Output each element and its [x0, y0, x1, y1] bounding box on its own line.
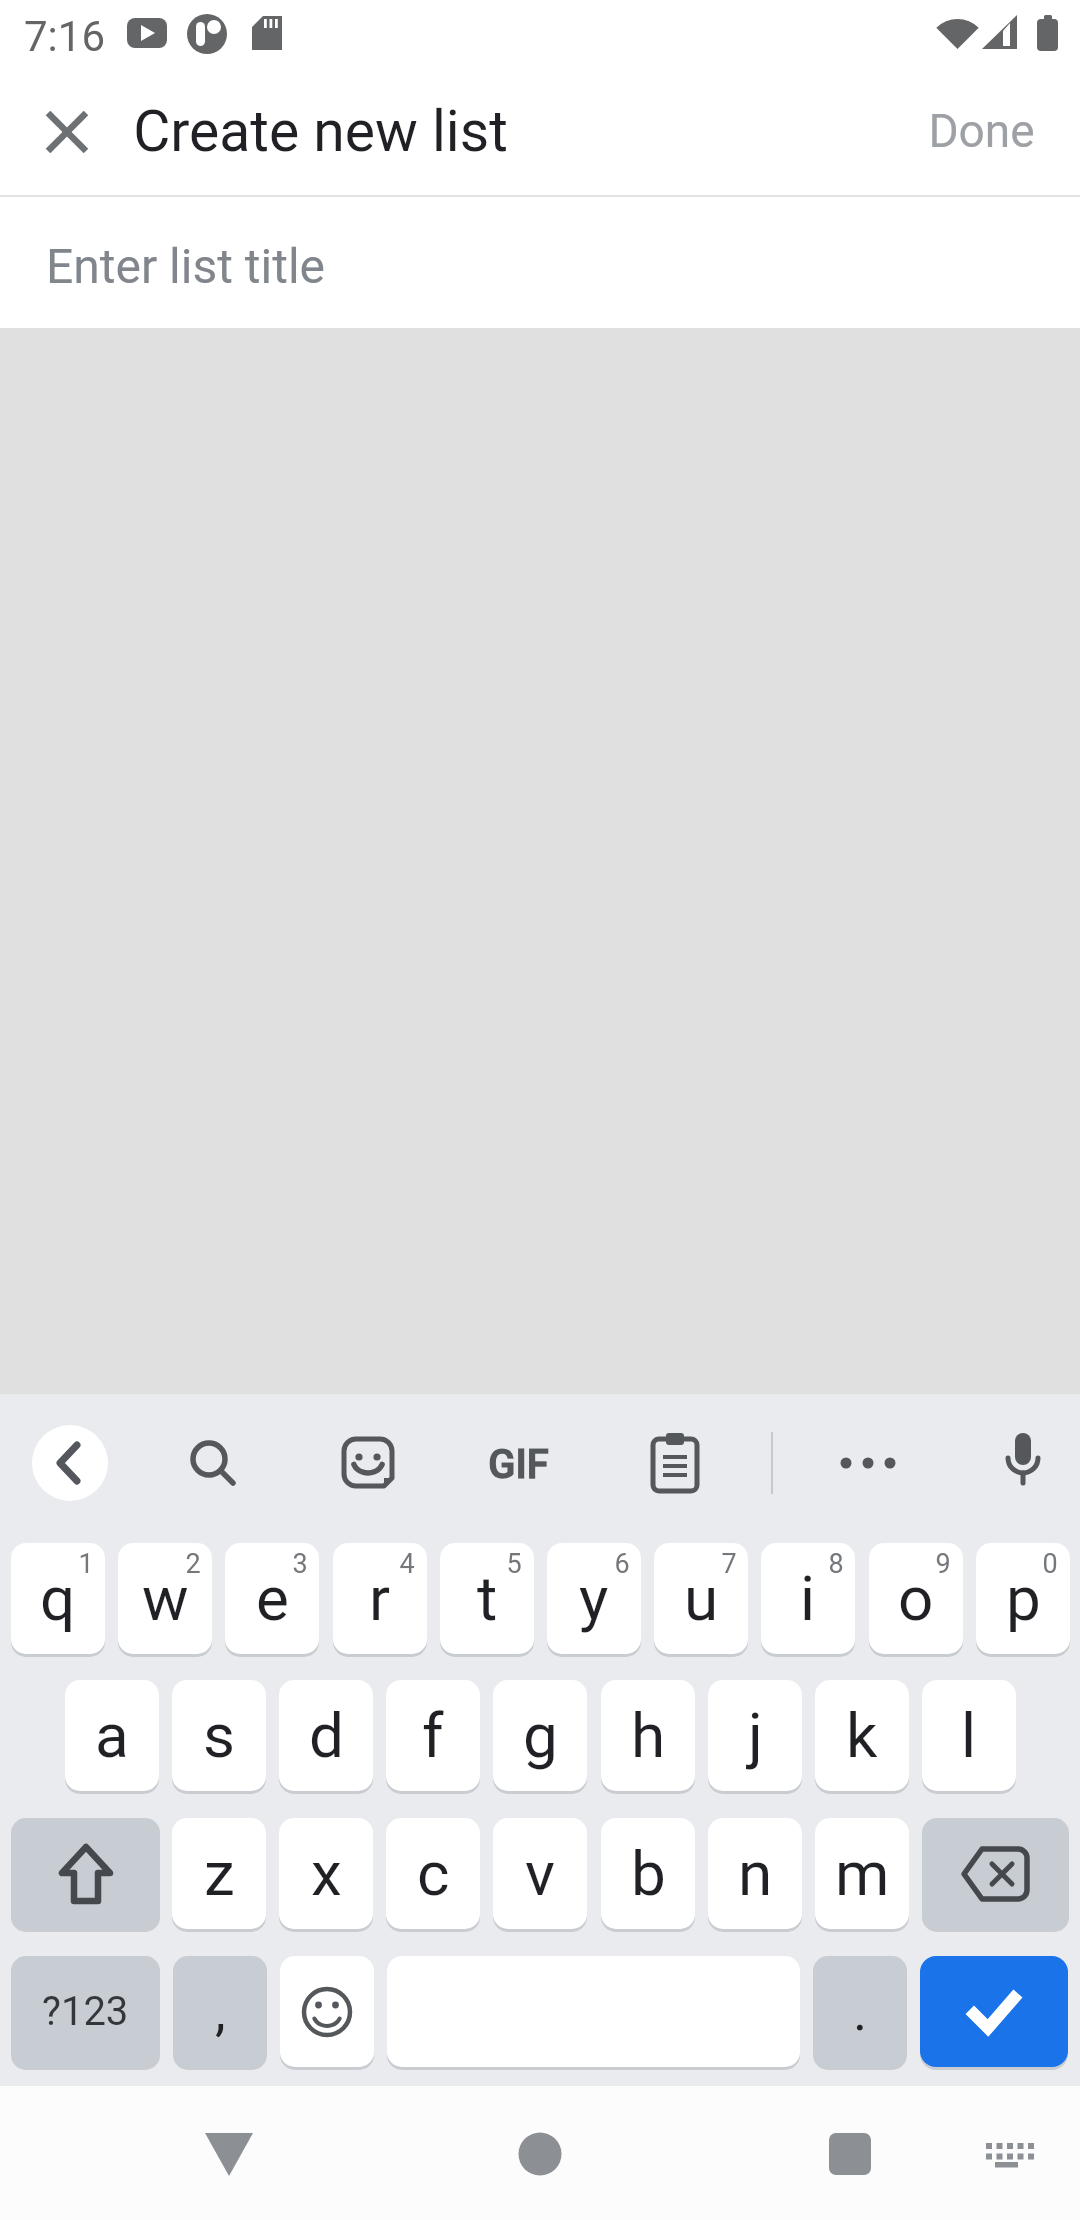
staticText: d: [309, 1699, 344, 1772]
staticText: q: [40, 1562, 76, 1635]
staticText: i: [800, 1562, 816, 1635]
button[interactable]: [922, 1818, 1069, 1929]
button[interactable]: [814, 2118, 886, 2190]
button[interactable]: a: [65, 1680, 159, 1791]
button[interactable]: [920, 1956, 1068, 2067]
button[interactable]: o: [869, 1543, 963, 1654]
button[interactable]: e: [225, 1543, 319, 1654]
button[interactable]: g: [493, 1680, 587, 1791]
staticText: o: [898, 1562, 934, 1635]
staticText: v: [525, 1837, 556, 1910]
staticText: 3: [292, 1548, 308, 1580]
staticText: r: [369, 1562, 391, 1635]
button[interactable]: k: [815, 1680, 909, 1791]
staticText: k: [846, 1699, 878, 1772]
button[interactable]: [38, 103, 96, 161]
staticText: 6: [614, 1548, 630, 1580]
staticText: x: [311, 1837, 342, 1910]
staticText: j: [748, 1699, 763, 1772]
button[interactable]: [504, 2118, 576, 2190]
staticText: ?123: [42, 1988, 129, 2035]
button[interactable]: c: [386, 1818, 480, 1929]
button[interactable]: Enter list title: [0, 197, 1080, 328]
staticText: b: [631, 1837, 666, 1910]
staticText: u: [684, 1562, 719, 1635]
button[interactable]: .: [813, 1956, 907, 2067]
staticText: n: [738, 1837, 773, 1910]
staticText: c: [417, 1837, 450, 1910]
staticText: p: [1006, 1562, 1041, 1635]
staticText: t: [477, 1562, 498, 1635]
button[interactable]: d: [279, 1680, 373, 1791]
button[interactable]: GIF: [483, 1438, 553, 1490]
staticText: Create new list: [133, 98, 508, 165]
staticText: y: [579, 1562, 609, 1635]
staticText: a: [95, 1699, 129, 1772]
button[interactable]: [280, 1956, 374, 2067]
staticText: z: [204, 1837, 235, 1910]
button[interactable]: f: [386, 1680, 480, 1791]
button[interactable]: u: [654, 1543, 748, 1654]
button[interactable]: x: [279, 1818, 373, 1929]
button[interactable]: ?123: [11, 1956, 160, 2067]
button[interactable]: q: [11, 1543, 105, 1654]
button[interactable]: [32, 1425, 108, 1501]
button[interactable]: i: [761, 1543, 855, 1654]
button[interactable]: m: [815, 1818, 909, 1929]
button[interactable]: [836, 1448, 900, 1478]
staticText: 4: [399, 1548, 415, 1580]
button[interactable]: [183, 1433, 243, 1493]
button[interactable]: t: [440, 1543, 534, 1654]
button[interactable]: s: [172, 1680, 266, 1791]
staticText: w: [142, 1562, 189, 1635]
staticText: f: [422, 1699, 444, 1772]
staticText: 7: [721, 1548, 737, 1580]
button[interactable]: [339, 1434, 397, 1492]
button[interactable]: z: [172, 1818, 266, 1929]
button[interactable]: [193, 2118, 265, 2190]
staticText: GIF: [488, 1441, 549, 1488]
button[interactable]: [998, 1430, 1048, 1496]
staticText: 0: [1042, 1548, 1058, 1580]
staticText: h: [631, 1699, 666, 1772]
staticText: 5: [506, 1548, 522, 1580]
button[interactable]: n: [708, 1818, 802, 1929]
staticText: Done: [928, 104, 1035, 158]
button[interactable]: b: [601, 1818, 695, 1929]
staticText: m: [835, 1837, 890, 1910]
staticText: 2: [185, 1548, 201, 1580]
button[interactable]: j: [708, 1680, 802, 1791]
button[interactable]: [650, 1432, 702, 1494]
button[interactable]: v: [493, 1818, 587, 1929]
staticText: 8: [828, 1548, 844, 1580]
button[interactable]: [11, 1818, 160, 1929]
staticText: g: [523, 1699, 558, 1772]
staticText: ,: [215, 1980, 226, 2043]
button[interactable]: w: [118, 1543, 212, 1654]
staticText: Enter list title: [46, 238, 326, 294]
staticText: 9: [935, 1548, 951, 1580]
staticText: e: [256, 1562, 289, 1635]
button[interactable]: r: [333, 1543, 427, 1654]
button[interactable]: ,: [173, 1956, 267, 2067]
staticText: s: [203, 1699, 235, 1772]
button[interactable]: p: [976, 1543, 1070, 1654]
button[interactable]: l: [922, 1680, 1016, 1791]
button[interactable]: [980, 2128, 1034, 2178]
staticText: 1: [78, 1548, 94, 1580]
staticText: .: [853, 1980, 868, 2043]
button[interactable]: h: [601, 1680, 695, 1791]
staticText: 7:16: [24, 12, 105, 61]
button[interactable]: y: [547, 1543, 641, 1654]
staticText: l: [961, 1699, 977, 1772]
button[interactable]: Done: [905, 93, 1035, 169]
